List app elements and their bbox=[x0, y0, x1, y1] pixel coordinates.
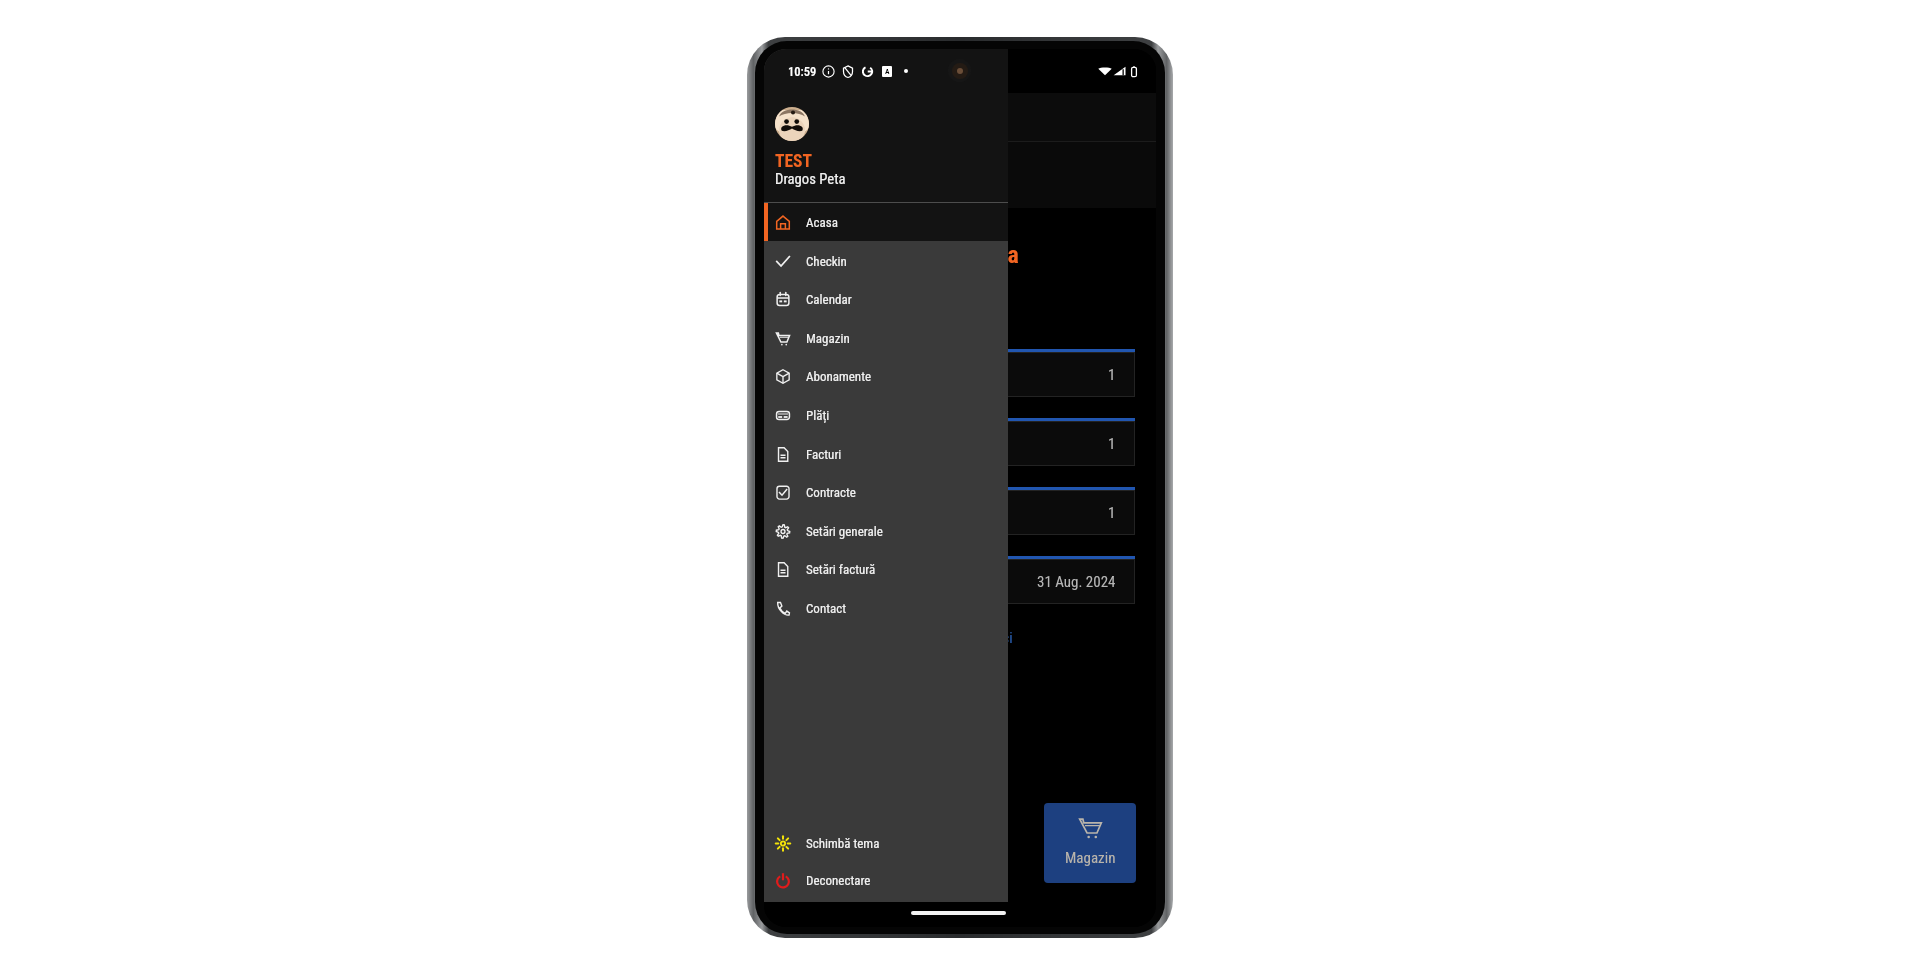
button[interactable]: Checkin bbox=[764, 242, 1008, 281]
button[interactable]: Calendar bbox=[764, 280, 1008, 319]
staticText: Facturi bbox=[806, 447, 842, 462]
staticText: TEST bbox=[775, 151, 813, 172]
staticText: Setări factură bbox=[806, 562, 876, 577]
staticText: 1 bbox=[1108, 366, 1116, 384]
staticText: Magazin bbox=[806, 331, 850, 346]
button[interactable]: Abonamente bbox=[764, 357, 1008, 396]
button[interactable]: Contracte bbox=[764, 473, 1008, 512]
staticText: Checkin bbox=[806, 254, 847, 269]
staticText: Calendar bbox=[806, 292, 852, 307]
other: Google bbox=[862, 66, 873, 77]
button[interactable]: Deconectare bbox=[764, 861, 1008, 900]
staticText: 1 bbox=[1108, 504, 1116, 522]
button[interactable]: Magazin bbox=[1044, 803, 1136, 883]
button[interactable]: Open navigation menu bbox=[770, 99, 806, 135]
button[interactable]: Acasa bbox=[764, 203, 1008, 241]
staticText: 31 Aug. 2024 bbox=[1037, 573, 1116, 591]
button[interactable]: Contact bbox=[764, 589, 1008, 628]
staticText: 10:59 bbox=[788, 64, 817, 79]
staticText: Contact bbox=[806, 601, 847, 616]
button[interactable]: TEST bbox=[764, 49, 1008, 202]
button[interactable]: Schimbă tema bbox=[764, 824, 1008, 863]
button[interactable]: Setări generale bbox=[764, 512, 1008, 551]
staticText: Plăți bbox=[806, 408, 830, 423]
button[interactable]: Facturi bbox=[764, 435, 1008, 474]
staticText: Abonamente bbox=[806, 369, 872, 384]
staticText: A bbox=[885, 67, 890, 76]
button[interactable]: Setări factură bbox=[764, 550, 1008, 589]
button[interactable]: Plăți bbox=[764, 396, 1008, 435]
staticText: Deconectare bbox=[806, 873, 871, 888]
staticText: 1 bbox=[1108, 435, 1116, 453]
staticText: Acasa bbox=[806, 215, 838, 230]
button[interactable]: Magazin bbox=[764, 319, 1008, 358]
staticText: Schimbă tema bbox=[806, 836, 880, 851]
staticText: Setări generale bbox=[806, 524, 883, 539]
staticText: Magazin bbox=[1065, 849, 1116, 867]
staticText: Contracte bbox=[806, 485, 856, 500]
staticText: Bine ai venit, Acasa bbox=[830, 241, 1019, 269]
staticText: Dragos Peta bbox=[775, 170, 846, 187]
button[interactable]: Vezi abonamentele tale aici bbox=[850, 629, 1013, 647]
